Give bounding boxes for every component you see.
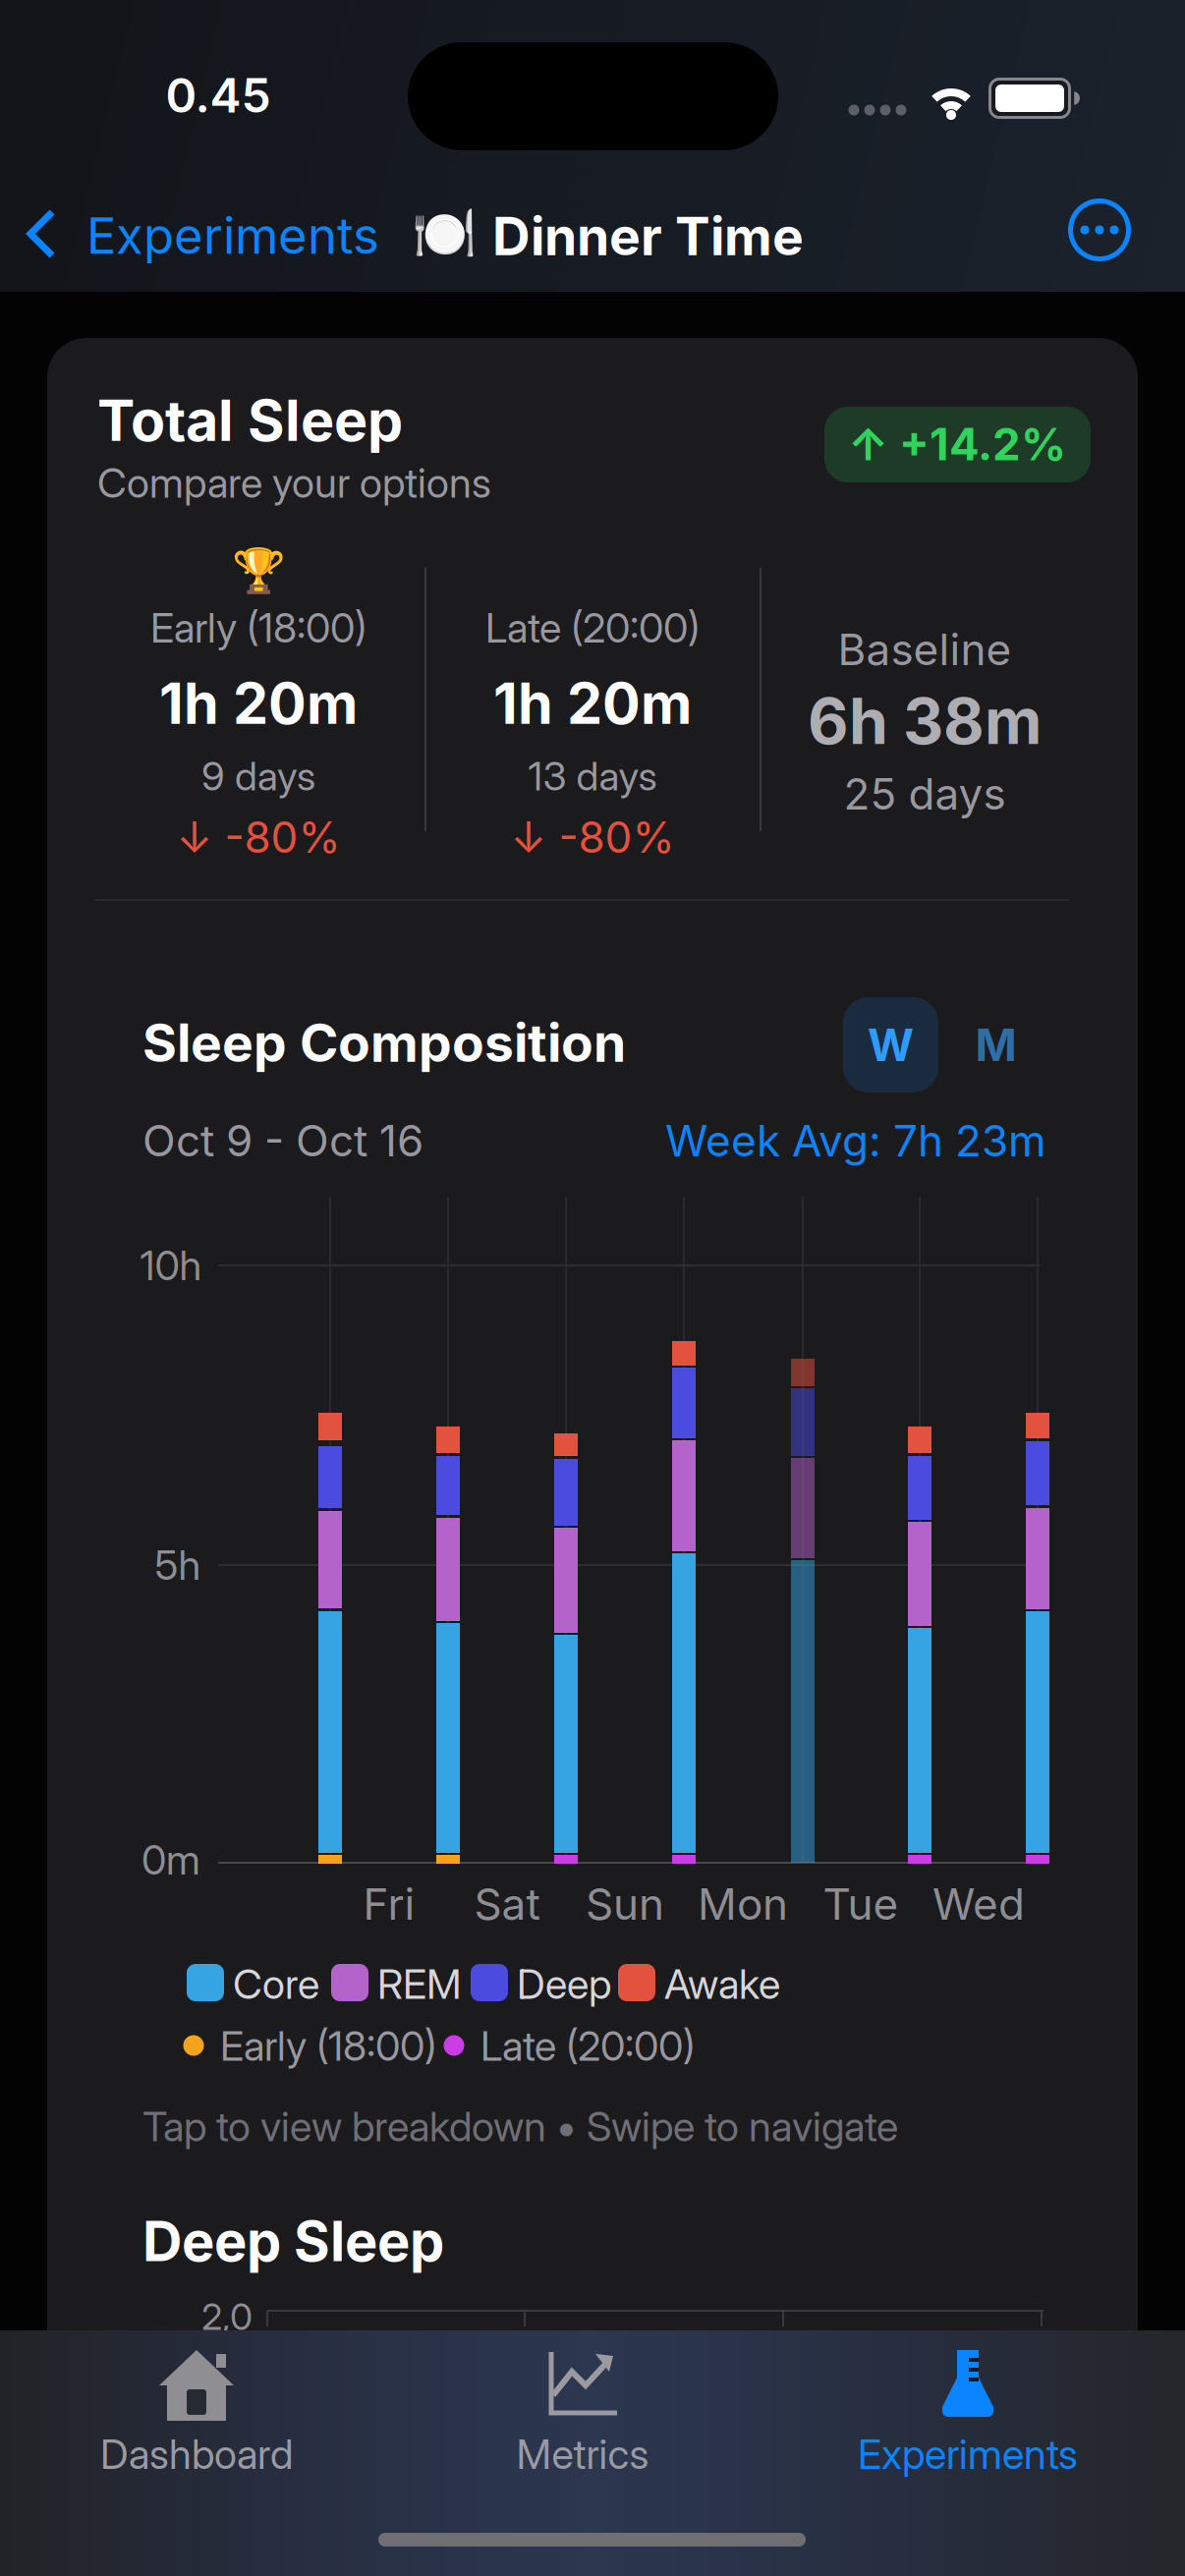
staticText: Metrics [516, 2430, 649, 2478]
staticText: Late (20:00) [480, 2022, 695, 2070]
staticText: Sleep Composition [142, 1012, 626, 1074]
staticText: Sat [474, 1878, 540, 1929]
staticText: ↑ +14.2% [848, 418, 1066, 470]
staticText: Total Sleep [97, 387, 403, 454]
staticText: ↓ -80% [510, 812, 675, 862]
button[interactable]: Metrics [465, 2350, 1185, 2576]
staticText: 0.45 [166, 67, 271, 123]
staticText: 2,0 [201, 2295, 253, 2338]
staticText: Early (18:00) [150, 604, 367, 652]
staticText: Dashboard [100, 2430, 293, 2478]
staticText: W [868, 1019, 914, 1071]
staticText: Deep [517, 1960, 611, 2008]
staticText: Sun [586, 1878, 664, 1929]
staticText: 10h [140, 1241, 202, 1289]
staticText: Core [233, 1960, 319, 2008]
button[interactable]: M [948, 997, 1044, 1092]
button[interactable]: Dashboard [79, 2350, 1185, 2576]
button[interactable]: Experiments [26, 186, 399, 274]
staticText: 6h 38m [808, 684, 1042, 758]
staticText: 🍽️ [412, 204, 477, 264]
staticText: Fri [363, 1878, 415, 1929]
staticText: 9 days [201, 753, 315, 799]
staticText: Wed [932, 1878, 1025, 1929]
button[interactable]: More [1068, 198, 1131, 261]
staticText: Tue [823, 1878, 899, 1929]
staticText: 25 days [844, 768, 1006, 819]
button[interactable]: Experiments [850, 2350, 1185, 2576]
staticText: ↓ -80% [176, 812, 340, 862]
staticText: Experiments [858, 2430, 1078, 2478]
staticText: Baseline [838, 624, 1012, 675]
staticText: 1h 20m [493, 670, 692, 737]
staticText: Compare your options [97, 459, 491, 507]
staticText: Dinner Time [492, 205, 804, 267]
staticText: Late (20:00) [485, 604, 700, 652]
staticText: 5h [155, 1541, 201, 1589]
staticText: Early (18:00) [220, 2022, 436, 2070]
staticText: Tap to view breakdown • Swipe to navigat… [142, 2102, 898, 2150]
staticText: Mon [698, 1878, 788, 1929]
staticText: REM [377, 1960, 462, 2008]
button[interactable]: W [843, 997, 938, 1092]
staticText: Awake [664, 1960, 780, 2008]
staticText: Experiments [86, 206, 379, 265]
staticText: Oct 9 - Oct 16 [142, 1115, 423, 1166]
staticText: 1h 20m [159, 670, 358, 737]
staticText: 🏆 [231, 546, 285, 596]
staticText: Week Avg: 7h 23m [665, 1115, 1046, 1166]
staticText: Deep Sleep [142, 2209, 444, 2274]
staticText: 0m [141, 1836, 200, 1884]
staticText: M [975, 1019, 1016, 1071]
staticText: 13 days [528, 753, 657, 799]
